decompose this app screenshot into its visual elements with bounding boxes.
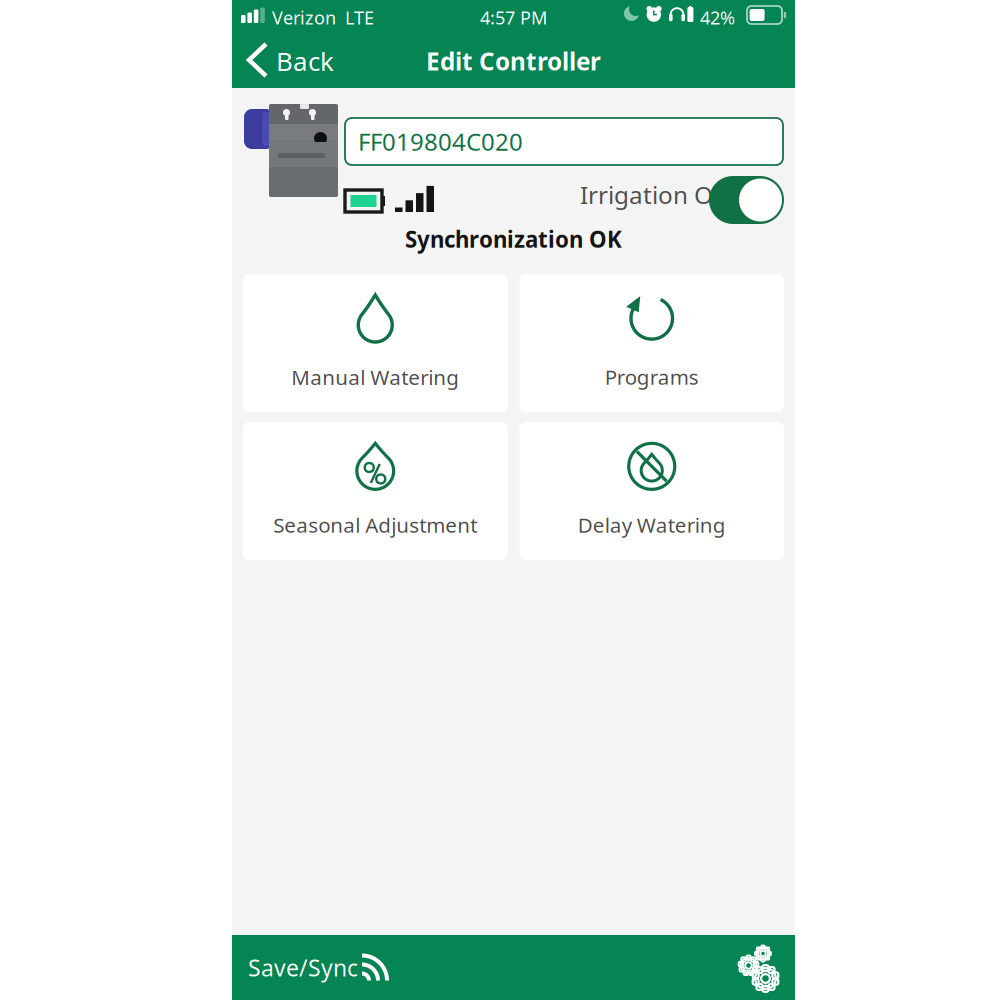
button[interactable]: Delay Watering [519, 422, 784, 560]
staticText: Verizon [272, 5, 336, 30]
staticText: Programs [605, 363, 699, 391]
staticText: LTE [345, 5, 374, 30]
staticText: Synchronization OK [405, 224, 622, 254]
staticText: Manual Watering [291, 363, 459, 391]
button[interactable]: Back [238, 37, 344, 85]
button[interactable]: Programs [519, 274, 784, 412]
staticText: Seasonal Adjustment [273, 511, 477, 539]
staticText: Save/Sync [248, 952, 358, 983]
staticText: Edit Controller [426, 44, 601, 78]
staticText: 4:57 PM [480, 5, 547, 30]
staticText: FF019804C020 [358, 125, 523, 158]
staticText: Delay Watering [578, 511, 726, 539]
staticText: Irrigation ON [580, 178, 731, 211]
button[interactable] [709, 176, 784, 224]
button[interactable]: Settings [726, 938, 789, 997]
button[interactable]: Manual Watering [243, 274, 507, 412]
staticText: 42% [700, 5, 735, 30]
button[interactable]: Seasonal Adjustment [243, 422, 507, 560]
button[interactable]: Save/Sync [238, 944, 400, 991]
staticText: Back [276, 43, 334, 79]
